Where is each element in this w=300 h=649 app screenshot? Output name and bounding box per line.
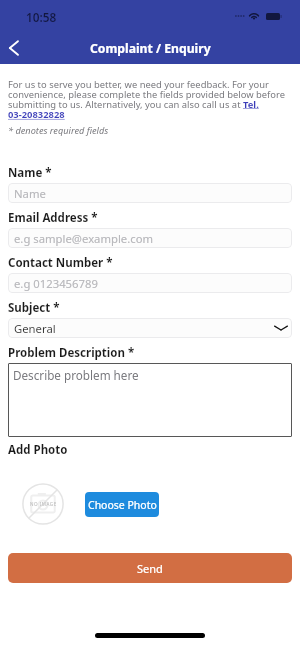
staticText: NO IMAGE [30,501,57,507]
button[interactable]: Name [8,183,292,203]
button[interactable]: General [8,318,292,338]
staticText: Name [14,186,46,201]
staticText: Name * [8,165,52,181]
button[interactable]: Back [1,35,27,61]
staticText: General [14,321,56,336]
staticText: Complaint / Enquiry [90,40,211,57]
staticText: Subject * [8,300,60,316]
staticText: 10:58 [26,9,57,25]
staticText: Problem Description * [8,345,135,361]
staticText: Describe problem here [13,367,139,383]
staticText: Add Photo [8,442,68,458]
button[interactable]: e.g sample@example.com [8,228,292,248]
button[interactable]: Describe problem here [8,363,292,437]
staticText: e.g 0123456789 [14,276,98,291]
staticText: Send [137,561,163,576]
staticText: * denotes required fields [8,124,109,137]
button[interactable]: e.g 0123456789 [8,273,292,293]
staticText: Choose Photo [88,498,157,512]
button[interactable]: Send [8,553,292,583]
staticText: e.g sample@example.com [14,231,154,246]
staticText: Email Address * [8,210,98,226]
staticText: For us to serve you better, we need your… [8,78,292,121]
staticText: Contact Number * [8,255,113,271]
button[interactable]: Choose Photo [85,492,159,517]
